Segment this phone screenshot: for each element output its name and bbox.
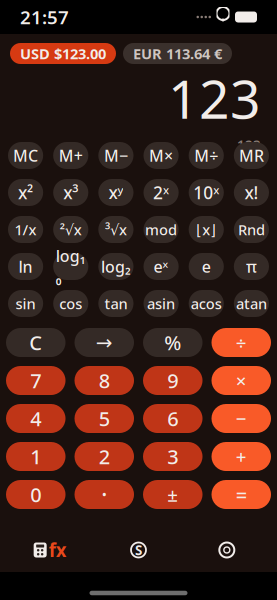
staticText: 123 [237, 136, 261, 153]
staticText: M+ [59, 145, 83, 166]
button[interactable]: % [143, 328, 202, 357]
staticText: × [236, 368, 247, 393]
staticText: ln [19, 256, 33, 277]
button[interactable]: MR [234, 142, 269, 169]
button[interactable]: + [211, 442, 271, 471]
button[interactable]: 4 [6, 404, 65, 433]
button[interactable]: 2 [74, 442, 134, 471]
button[interactable]: 10ˣ [189, 179, 224, 206]
button[interactable]: MC [8, 142, 43, 169]
button[interactable]: Calculator [6, 528, 94, 572]
button[interactable]: C [6, 328, 65, 357]
button[interactable]: × [211, 366, 271, 395]
staticText: C [29, 329, 42, 356]
staticText: MR [239, 145, 264, 166]
staticText: x³ [63, 181, 78, 204]
button[interactable]: x! [234, 179, 269, 206]
button[interactable]: ÷ [211, 328, 271, 357]
button[interactable]: sin [8, 290, 43, 317]
staticText: + [236, 444, 247, 469]
button[interactable]: ± [143, 480, 202, 509]
staticText: mod [145, 220, 177, 239]
button[interactable]: ⌊x⌋ [189, 216, 224, 243]
staticText: Rnd [238, 220, 265, 239]
button[interactable]: ln [8, 253, 43, 280]
staticText: % [164, 329, 181, 356]
button[interactable]: atan [234, 290, 269, 317]
button[interactable]: 1/x [8, 216, 43, 243]
staticText: ⌊x⌋ [196, 220, 216, 239]
button[interactable]: M+ [53, 142, 88, 169]
button[interactable]: log₁₀ [53, 253, 88, 280]
button[interactable]: Settings [183, 528, 271, 572]
button[interactable]: 1 [6, 442, 65, 471]
button[interactable]: asin [143, 290, 179, 317]
button[interactable]: = [211, 480, 271, 509]
staticText: 123 [168, 63, 261, 133]
button[interactable]: e [189, 253, 224, 280]
staticText: π [246, 256, 257, 277]
staticText: · [101, 479, 107, 509]
button[interactable]: ³√x [98, 216, 133, 243]
staticText: atan [236, 294, 267, 313]
staticText: 7 [30, 367, 41, 394]
staticText: ± [167, 482, 178, 507]
button[interactable]: ²√x [53, 216, 88, 243]
button[interactable]: · [74, 480, 134, 509]
staticText: 8 [99, 367, 110, 394]
button[interactable]: 5 [74, 404, 134, 433]
button[interactable]: x³ [53, 179, 88, 206]
staticText: 3 [167, 443, 178, 470]
staticText: M× [149, 145, 173, 166]
button[interactable]: M÷ [189, 142, 224, 169]
button[interactable]: eˣ [143, 253, 179, 280]
staticText: x! [244, 181, 258, 204]
button[interactable]: 7 [6, 366, 65, 395]
staticText: 4 [30, 405, 41, 432]
button[interactable]: 0 [6, 480, 65, 509]
staticText: 9 [167, 367, 178, 394]
staticText: USD $123.00 [20, 44, 106, 63]
button[interactable]: mod [143, 216, 179, 243]
staticText: 10ˣ [193, 181, 219, 204]
button[interactable]: acos [189, 290, 224, 317]
button[interactable]: 9 [143, 366, 202, 395]
staticText: x² [18, 181, 33, 204]
staticText: ³√x [105, 220, 127, 239]
staticText: ²√x [60, 220, 82, 239]
button[interactable]: Rnd [234, 216, 269, 243]
staticText: sin [16, 294, 36, 313]
button[interactable]: tan [98, 290, 133, 317]
button[interactable]: M× [143, 142, 179, 169]
button[interactable]: 8 [74, 366, 134, 395]
staticText: xʸ [108, 181, 123, 204]
button[interactable]: EUR 113.64 € [123, 43, 232, 64]
button[interactable]: Currency [94, 528, 183, 572]
staticText: 21:57 [20, 5, 69, 29]
staticText: 1 [30, 443, 41, 470]
button[interactable]: 3 [143, 442, 202, 471]
button[interactable]: 6 [143, 404, 202, 433]
staticText: M÷ [194, 145, 218, 166]
button[interactable]: − [211, 404, 271, 433]
button[interactable]: USD $123.00 [10, 43, 116, 64]
staticText: eˣ [154, 256, 169, 277]
staticText: e [202, 256, 211, 277]
staticText: fx [49, 538, 67, 562]
button[interactable]: → [74, 328, 134, 357]
button[interactable]: M− [98, 142, 133, 169]
button[interactable]: 2ˣ [143, 179, 179, 206]
staticText: log₁₀ [56, 245, 86, 288]
staticText: 2ˣ [153, 181, 169, 204]
button[interactable]: π [234, 253, 269, 280]
button[interactable]: xʸ [98, 179, 133, 206]
staticText: − [236, 406, 247, 431]
button[interactable]: log₂ [98, 253, 133, 280]
staticText: acos [191, 294, 222, 313]
staticText: ÷ [236, 330, 247, 355]
staticText: S [135, 541, 142, 559]
button[interactable]: x² [8, 179, 43, 206]
staticText: 5 [99, 405, 110, 432]
button[interactable]: cos [53, 290, 88, 317]
staticText: EUR 113.64 € [133, 44, 222, 63]
